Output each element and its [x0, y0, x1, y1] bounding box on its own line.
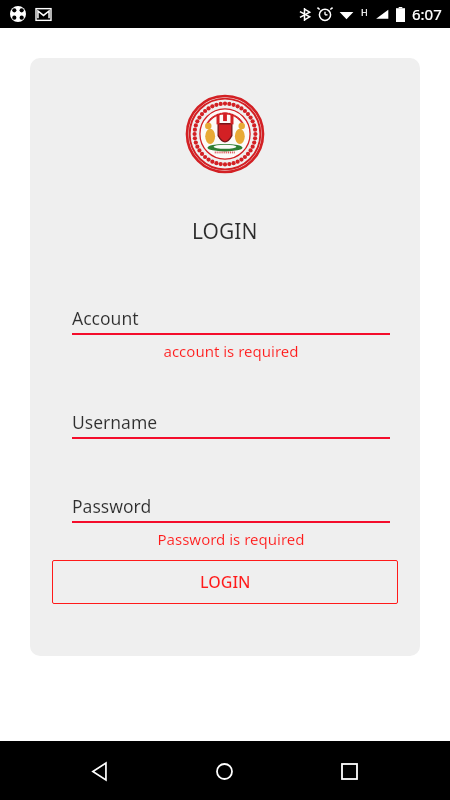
staticText: Username — [72, 410, 158, 434]
staticText: account is required — [163, 341, 299, 361]
staticText: H — [361, 6, 368, 18]
button[interactable]: Back — [76, 747, 124, 795]
staticText: Password is required — [157, 529, 305, 549]
staticText: LOGIN — [200, 571, 251, 593]
other: Department logo — [187, 96, 263, 172]
button[interactable]: LOGIN — [52, 560, 398, 604]
staticText: Account — [72, 306, 139, 330]
button[interactable]: Recent apps — [325, 747, 373, 795]
button[interactable]: Account — [72, 306, 378, 330]
button[interactable]: Password — [72, 494, 378, 518]
staticText: LOGIN — [192, 217, 258, 246]
button[interactable]: Home — [200, 747, 248, 795]
button[interactable]: Username — [72, 410, 378, 434]
staticText: Password — [72, 494, 152, 518]
staticText: 6:07 — [412, 4, 442, 24]
